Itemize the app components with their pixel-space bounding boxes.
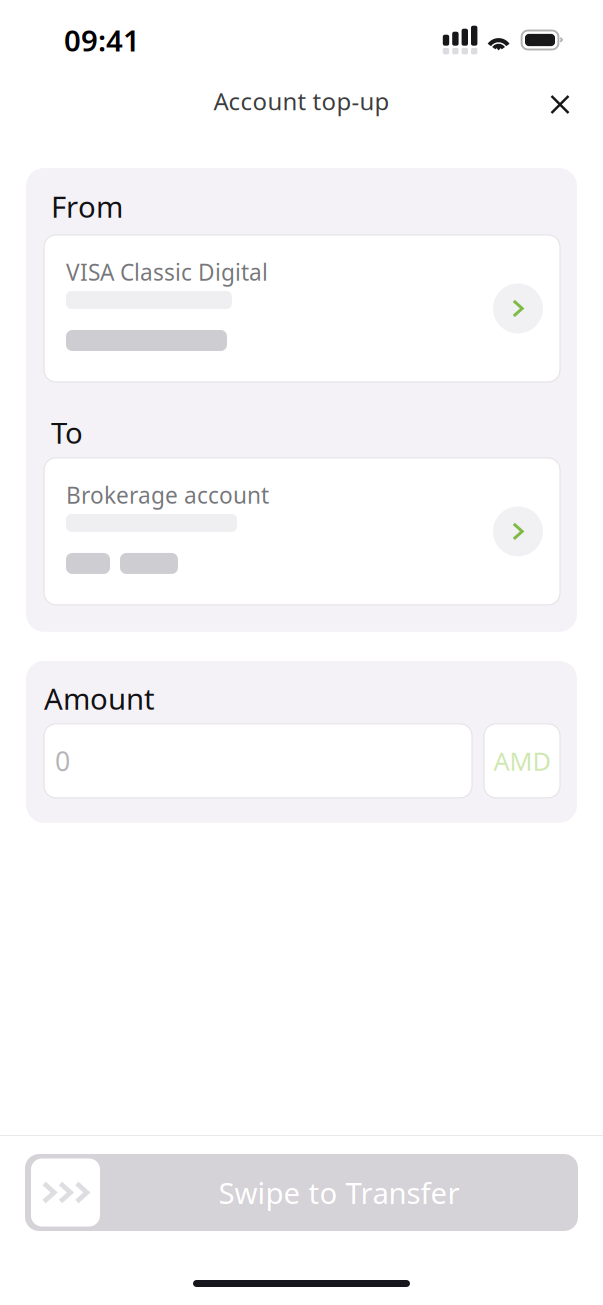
staticText: From xyxy=(51,187,123,226)
staticText: Brokerage account xyxy=(66,480,269,510)
staticText: 09:41 xyxy=(64,20,140,59)
button[interactable]: Swipe to Transfer xyxy=(25,1154,578,1231)
staticText: Amount xyxy=(44,679,155,718)
button[interactable]: Amount xyxy=(44,724,472,798)
staticText: Swipe to Transfer xyxy=(218,1173,459,1212)
button[interactable]: Currency AMD xyxy=(484,724,560,798)
button[interactable]: From account, VISA Classic Digital xyxy=(44,235,560,382)
staticText: To xyxy=(51,413,83,452)
staticText: AMD xyxy=(493,744,550,778)
button[interactable]: To account, Brokerage account xyxy=(44,458,560,605)
staticText: Account top-up xyxy=(213,85,389,117)
staticText: 0 xyxy=(55,743,70,779)
staticText: VISA Classic Digital xyxy=(66,257,268,287)
button[interactable]: Close xyxy=(534,71,586,130)
